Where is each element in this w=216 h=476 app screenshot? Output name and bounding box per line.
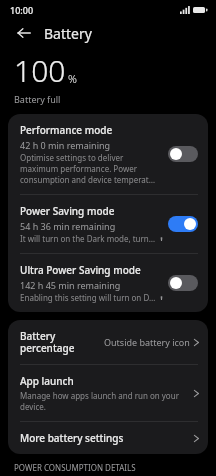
button[interactable]: Power Saving mode <box>8 195 208 253</box>
staticText: App launch <box>20 374 74 388</box>
staticText: % <box>68 71 77 86</box>
button[interactable]: Toggle off <box>168 275 198 291</box>
button[interactable]: Back <box>14 23 34 43</box>
staticText: 54 h 36 min remaining <box>20 220 116 232</box>
button[interactable]: More battery settings <box>8 422 208 454</box>
staticText: 42 h 0 min remaining <box>20 139 111 151</box>
staticText: 100 <box>14 50 66 91</box>
staticText: Power Saving mode <box>20 204 115 218</box>
staticText: Optimise settings to deliver maximum per… <box>20 152 158 185</box>
staticText: Performance mode <box>20 123 113 137</box>
button[interactable]: Ultra Power Saving mode <box>8 254 208 312</box>
staticText: Outside battery icon <box>104 336 190 348</box>
staticText: 10:00 <box>10 4 34 16</box>
button[interactable]: Toggle off <box>168 146 198 162</box>
button[interactable]: App launch <box>8 365 208 421</box>
staticText: Battery <box>44 24 92 43</box>
staticText: It will turn on the Dark mode, turn… <box>20 233 156 244</box>
staticText: Battery full <box>14 93 61 105</box>
staticText: Manage how apps launch and run on your d… <box>20 390 193 412</box>
staticText: Ultra Power Saving mode <box>20 263 141 277</box>
button[interactable]: Battery percentage <box>8 320 208 364</box>
staticText: Battery percentage <box>20 329 104 355</box>
button[interactable]: Toggle on <box>168 216 198 232</box>
staticText: POWER CONSUMPTION DETAILS <box>14 462 136 473</box>
staticText: More battery settings <box>20 431 124 445</box>
staticText: Enabling this setting will turn on D… <box>20 292 156 303</box>
button[interactable]: Performance mode <box>8 114 208 194</box>
staticText: 142 h 45 min remaining <box>20 279 121 291</box>
